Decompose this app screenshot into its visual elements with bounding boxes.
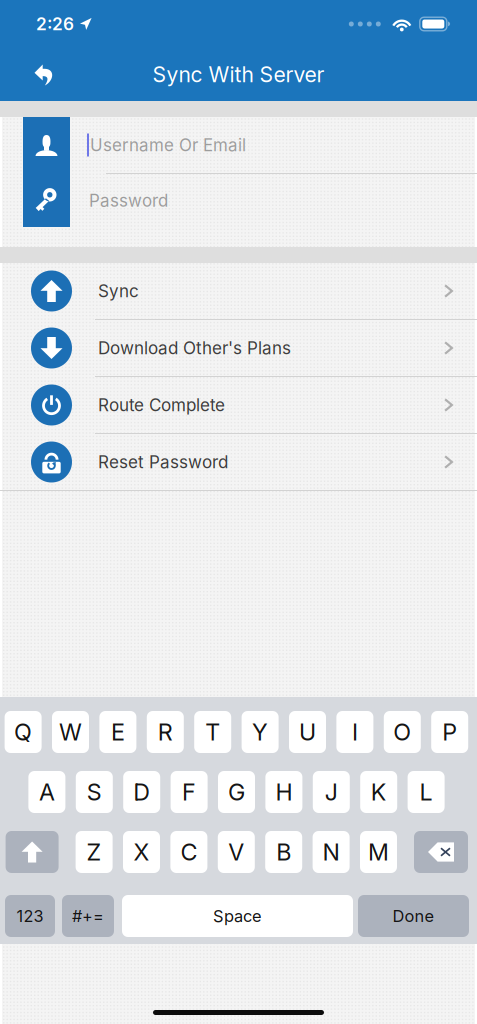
staticText: P [442,718,457,746]
staticText: B [276,838,291,866]
button[interactable]: O [384,711,421,753]
staticText: R [158,718,173,746]
button[interactable]: Y [242,711,279,753]
staticText: V [228,838,244,866]
staticText: S [87,778,102,806]
staticText: X [133,838,149,866]
button[interactable]: Download Other's Plans [0,320,477,376]
staticText: 123 [16,906,43,926]
staticText: E [111,718,125,746]
staticText: Sync [98,281,139,301]
staticText: A [39,778,55,806]
staticText: #+= [72,906,104,926]
button[interactable]: Reset Password [0,434,477,490]
button[interactable]: Shift [6,831,59,873]
button[interactable]: #+= [62,895,114,937]
button[interactable]: U [289,711,326,753]
staticText: T [205,718,220,746]
button[interactable]: P [431,711,468,753]
button[interactable]: B [265,831,302,873]
button[interactable]: E [99,711,136,753]
staticText: J [325,778,338,806]
button[interactable]: S [76,771,113,813]
button[interactable]: J [313,771,350,813]
button[interactable]: Q [5,711,42,753]
button[interactable]: Back [21,51,67,97]
button[interactable]: Done [358,895,469,937]
button[interactable]: L [408,771,445,813]
button[interactable]: N [313,831,350,873]
button[interactable]: A [28,771,65,813]
staticText: U [299,718,316,746]
staticText: W [59,718,82,746]
staticText: N [323,838,340,866]
staticText: Download Other's Plans [98,338,291,358]
button[interactable]: W [52,711,89,753]
button[interactable]: K [360,771,397,813]
button[interactable]: X [123,831,160,873]
button[interactable]: H [265,771,302,813]
staticText: Username Or Email [90,135,246,155]
staticText: I [352,718,358,746]
staticText: Q [14,718,32,746]
staticText: Password [89,190,168,211]
button[interactable]: D [123,771,160,813]
button[interactable]: Sync [0,263,477,319]
staticText: Reset Password [98,452,228,472]
button[interactable]: V [218,831,255,873]
staticText: Done [392,906,434,926]
staticText: Space [213,906,262,926]
button[interactable]: T [194,711,231,753]
staticText: M [368,838,389,866]
staticText: Y [252,718,268,746]
staticText: C [180,838,197,866]
button[interactable]: Z [76,831,113,873]
button[interactable]: Delete [414,831,468,873]
staticText: F [182,778,196,806]
staticText: D [133,778,150,806]
button[interactable]: C [170,831,207,873]
button[interactable]: F [171,771,208,813]
button[interactable]: G [218,771,255,813]
button[interactable]: R [147,711,184,753]
staticText: Route Complete [98,395,225,415]
staticText: Z [87,838,102,866]
staticText: O [393,718,411,746]
button[interactable]: M [360,831,397,873]
button[interactable]: I [336,711,373,753]
staticText: 2:26 [36,14,74,34]
staticText: H [275,778,292,806]
button[interactable]: Space [122,895,353,937]
staticText: Sync With Server [152,62,324,87]
button[interactable]: 123 [5,895,55,937]
staticText: L [420,778,433,806]
staticText: G [228,778,245,806]
staticText: K [371,778,387,806]
button[interactable]: Route Complete [0,377,477,433]
